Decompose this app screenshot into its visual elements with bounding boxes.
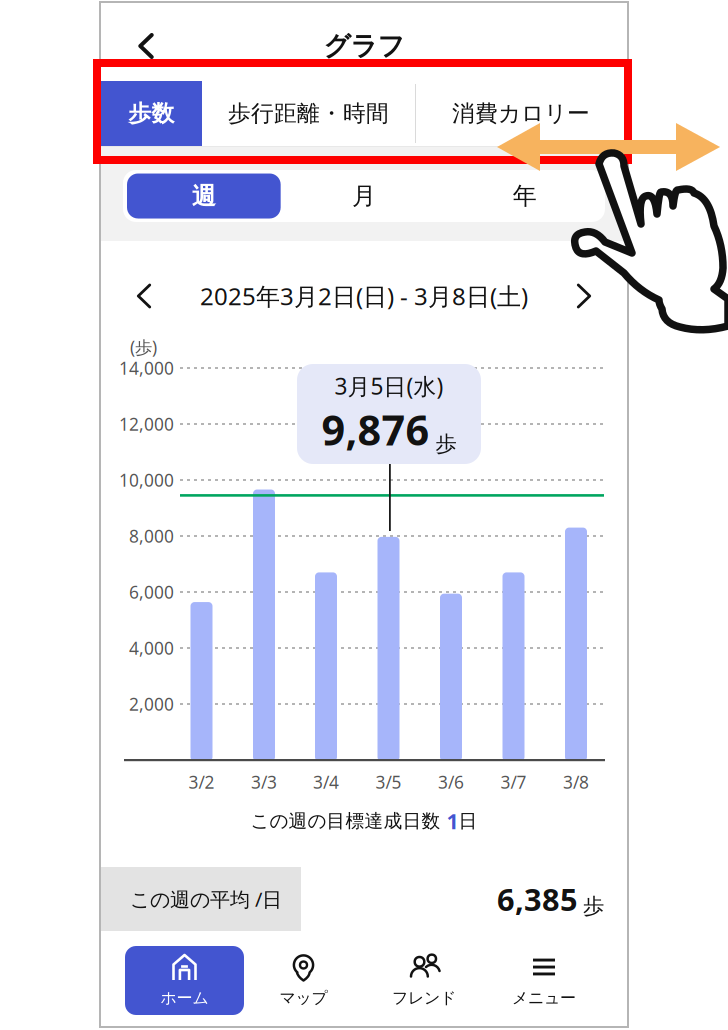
staticText: この週の平均 /日 bbox=[130, 886, 282, 912]
staticText: グラフ bbox=[323, 30, 404, 62]
staticText: 歩 bbox=[583, 893, 604, 919]
staticText: 3/5 bbox=[375, 770, 401, 793]
staticText: 2025年3月2日(日) - 3月8日(土) bbox=[200, 280, 528, 312]
staticText: 3/2 bbox=[188, 770, 214, 793]
button[interactable]: 歩数 bbox=[101, 81, 202, 146]
button[interactable]: 歩行距離・時間 bbox=[202, 81, 415, 146]
button[interactable]: 消費カロリー bbox=[415, 81, 627, 146]
staticText: 3月5日(水) bbox=[334, 371, 443, 401]
staticText: 3/3 bbox=[251, 770, 277, 793]
staticText: 3/7 bbox=[500, 770, 526, 793]
staticText: 12,000 bbox=[119, 412, 174, 435]
staticText: 9,876 bbox=[321, 402, 429, 457]
staticText: 4,000 bbox=[129, 636, 174, 659]
staticText: 2,000 bbox=[129, 692, 174, 715]
staticText: メニュー bbox=[512, 988, 576, 1008]
staticText: 6,000 bbox=[129, 580, 174, 603]
staticText: フレンド bbox=[392, 988, 456, 1008]
staticText: 消費カロリー bbox=[452, 100, 590, 127]
staticText: 週 bbox=[192, 181, 216, 211]
button[interactable]: 次の週 bbox=[558, 270, 610, 322]
staticText: 歩 bbox=[435, 431, 456, 457]
staticText: 3/4 bbox=[313, 770, 339, 793]
staticText: 3/8 bbox=[563, 770, 589, 793]
staticText: 3/6 bbox=[438, 770, 464, 793]
staticText: 歩数 bbox=[128, 100, 174, 127]
staticText: 10,000 bbox=[119, 468, 174, 491]
staticText: この週の目標達成日数 bbox=[250, 809, 446, 832]
button[interactable]: 年 bbox=[444, 170, 605, 222]
button[interactable]: マップ bbox=[247, 946, 359, 1015]
staticText: 6,385 bbox=[497, 879, 578, 919]
staticText: 年 bbox=[513, 181, 537, 211]
staticText: 月 bbox=[352, 181, 376, 211]
staticText: 日 bbox=[458, 809, 477, 832]
staticText: (歩) bbox=[130, 335, 157, 358]
staticText: マップ bbox=[279, 988, 327, 1008]
button[interactable]: 月 bbox=[284, 170, 444, 222]
button[interactable]: ホーム bbox=[125, 946, 244, 1015]
staticText: ホーム bbox=[160, 988, 208, 1008]
button[interactable]: 週 bbox=[127, 173, 281, 218]
staticText: 14,000 bbox=[119, 356, 174, 379]
staticText: 8,000 bbox=[129, 524, 174, 547]
button[interactable]: フレンド bbox=[368, 946, 480, 1015]
staticText: 1 bbox=[446, 807, 458, 835]
staticText: 歩行距離・時間 bbox=[228, 100, 389, 127]
button[interactable]: 戻る bbox=[120, 20, 172, 72]
button[interactable]: 前の週 bbox=[118, 270, 170, 322]
button[interactable]: メニュー bbox=[488, 946, 600, 1015]
